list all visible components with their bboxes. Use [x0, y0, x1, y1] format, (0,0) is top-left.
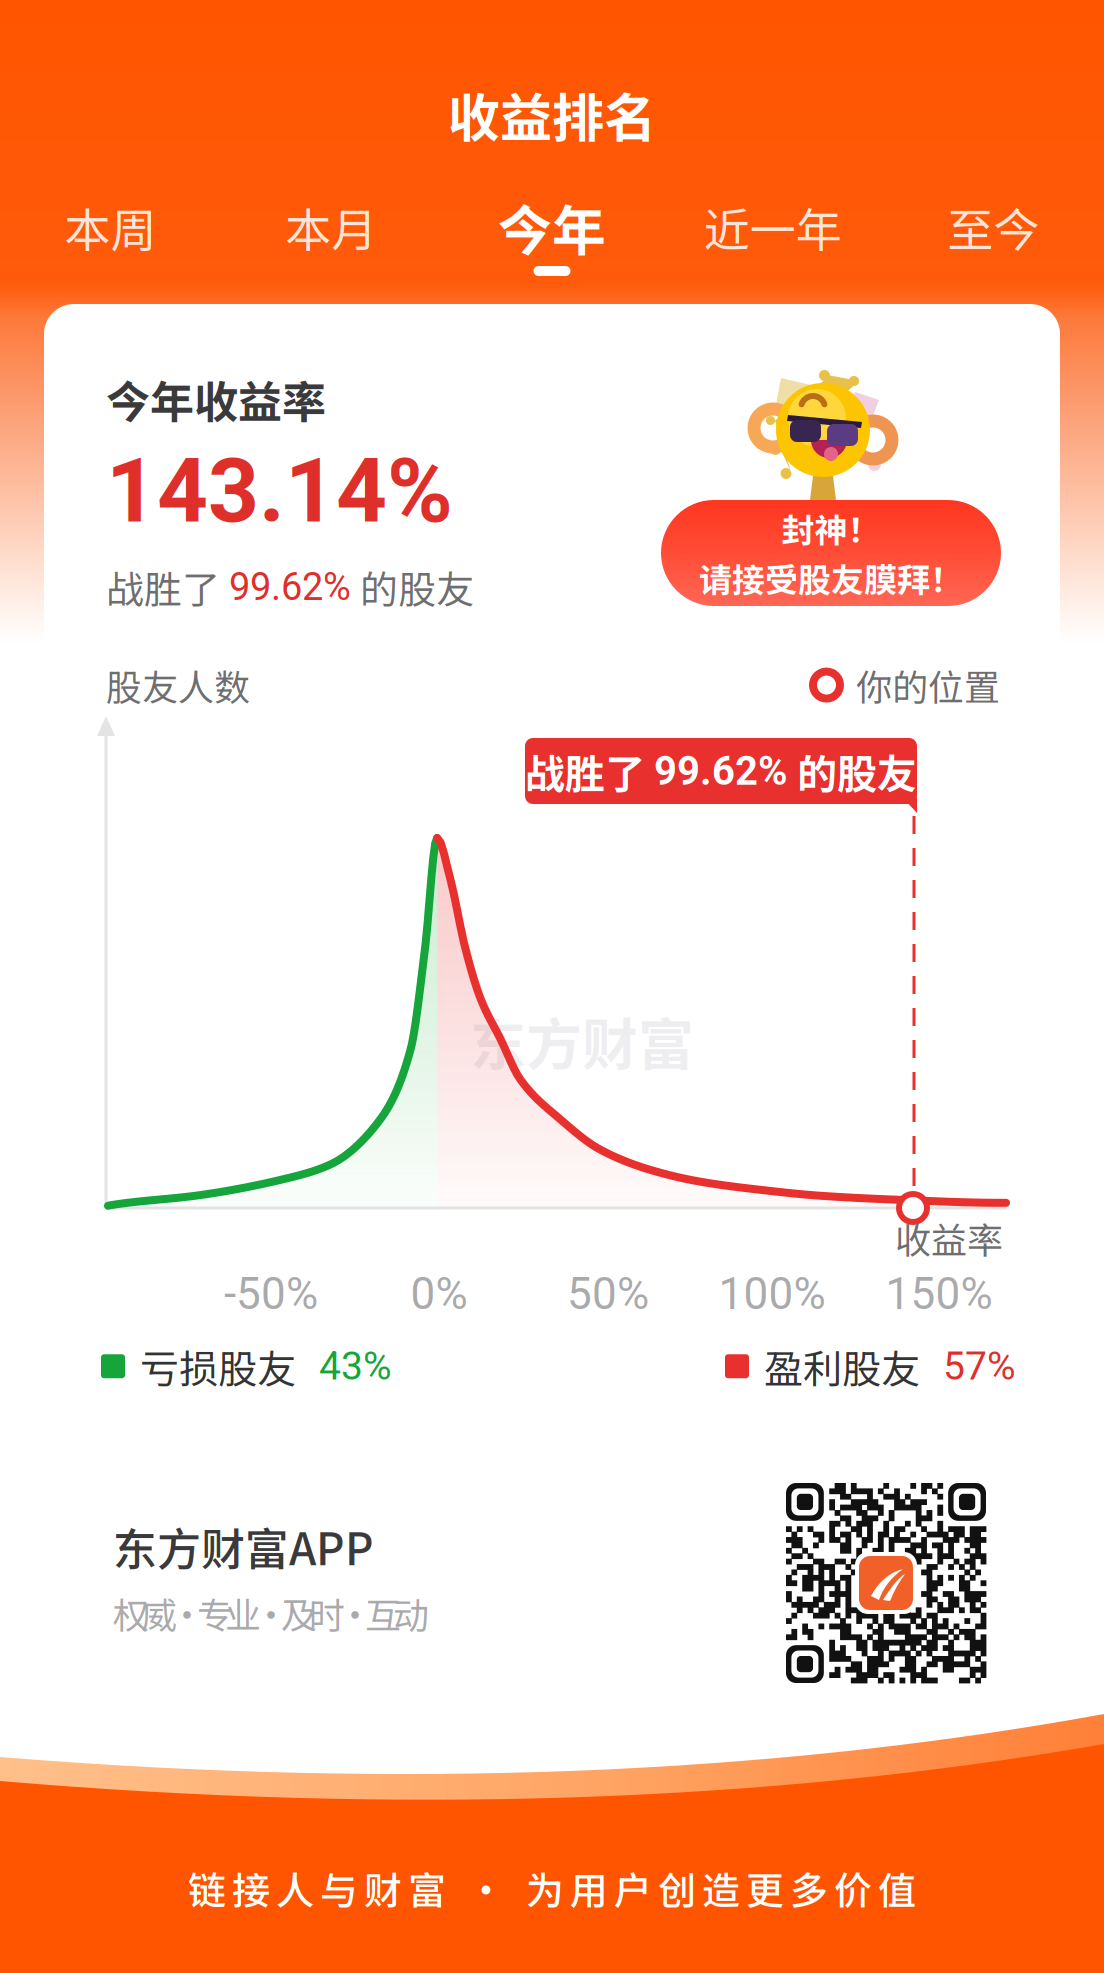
staticText: 今年: [498, 188, 606, 266]
staticText: 的股友: [788, 742, 917, 800]
staticText: 亏损股友: [140, 1338, 296, 1394]
staticText: 股友人数: [106, 659, 250, 711]
staticText: 的股友: [351, 559, 474, 614]
staticText: 143.14%: [106, 439, 453, 543]
staticText: 99.62%: [229, 565, 351, 609]
staticText: 链接人与财富 · 为用户创造更多价值: [188, 1860, 916, 1915]
staticText: 57%: [943, 1343, 1016, 1389]
staticText: 本月: [285, 194, 377, 260]
staticText: 收益率: [895, 1212, 1003, 1264]
staticText: 100%: [718, 1268, 825, 1320]
staticText: 至今: [948, 194, 1040, 260]
staticText: 战胜了: [525, 742, 654, 800]
staticText: 请接受股友膜拜！: [699, 554, 963, 602]
staticText: 东方财富APP: [113, 1514, 374, 1578]
staticText: -50%: [224, 1268, 318, 1320]
staticText: 你的位置: [856, 659, 1000, 711]
button[interactable]: 至今: [883, 200, 1104, 276]
button[interactable]: 近一年: [662, 200, 883, 276]
staticText: 收益排名: [448, 76, 656, 152]
staticText: 权威 · 专业 · 及时 · 互动: [113, 1587, 429, 1639]
staticText: 150%: [885, 1268, 992, 1320]
button[interactable]: 本月: [221, 200, 442, 276]
staticText: 本周: [64, 194, 156, 260]
button[interactable]: 今年: [442, 200, 662, 276]
staticText: 43%: [319, 1343, 392, 1389]
staticText: 近一年: [704, 194, 842, 260]
staticText: 东方财富: [470, 1000, 694, 1081]
staticText: 50%: [567, 1268, 649, 1320]
staticText: 战胜了: [106, 559, 229, 614]
staticText: 99.62%: [654, 748, 788, 794]
button[interactable]: 本周: [0, 200, 221, 276]
staticText: 盈利股友: [764, 1338, 920, 1394]
staticText: 0%: [410, 1268, 467, 1320]
staticText: 今年收益率: [106, 367, 326, 431]
staticText: 封神！: [781, 504, 880, 552]
